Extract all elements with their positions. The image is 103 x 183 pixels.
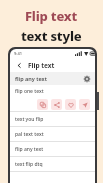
staticText: flip any text	[15, 75, 47, 82]
button[interactable]: Favorite	[65, 99, 76, 110]
staticText: Flip text	[28, 61, 55, 70]
button[interactable]: pal text text	[10, 127, 95, 141]
staticText: Flip text	[25, 7, 78, 25]
staticText: flip one text	[15, 88, 44, 95]
staticText: text flip dtq	[15, 161, 43, 168]
button[interactable]: text you flip	[10, 112, 95, 126]
button[interactable]: Share	[51, 99, 62, 110]
button[interactable]: Back	[15, 61, 24, 70]
button[interactable]: Settings	[83, 75, 91, 83]
button[interactable]: flip any text	[10, 142, 95, 156]
staticText: 9:41	[14, 51, 22, 56]
button[interactable]: flip any text	[10, 72, 95, 85]
staticText: pal text text	[15, 131, 44, 138]
button[interactable]: flip one text	[10, 85, 95, 97]
button[interactable]: Copy	[37, 99, 48, 110]
button[interactable]: Send	[79, 99, 90, 110]
button[interactable]: text flip dtq	[10, 157, 95, 171]
staticText: flip any text	[15, 146, 44, 153]
staticText: text style	[21, 27, 82, 45]
staticText: text you flip	[15, 116, 44, 123]
